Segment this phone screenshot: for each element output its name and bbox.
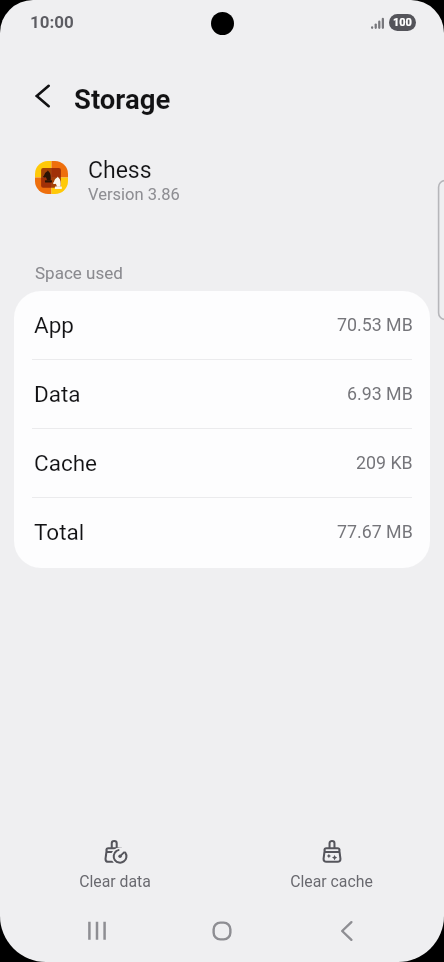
staticText: Total (34, 519, 85, 545)
staticText: 209 KB (356, 452, 413, 473)
button[interactable]: Recent apps (72, 906, 122, 956)
button[interactable]: Data (14, 360, 430, 429)
staticText: App (34, 312, 74, 338)
staticText: Chess (88, 157, 152, 184)
staticText: 100 (393, 16, 412, 29)
staticText: 70.53 MB (337, 314, 413, 335)
staticText: 10:00 (30, 12, 74, 32)
button[interactable]: Cache (14, 429, 430, 498)
staticText: Storage (74, 83, 171, 115)
staticText: Version 3.86 (88, 185, 180, 204)
button[interactable]: App (14, 291, 430, 360)
staticText: Data (34, 381, 81, 407)
button[interactable]: Clear data (53, 828, 177, 896)
staticText: Clear data (79, 872, 151, 891)
staticText: 6.93 MB (347, 383, 413, 404)
staticText: 77.67 MB (337, 521, 413, 542)
staticText: Clear cache (290, 872, 373, 891)
button[interactable]: Back (322, 906, 372, 956)
button[interactable]: Back (25, 78, 61, 114)
button[interactable]: Clear cache (269, 828, 393, 896)
button[interactable]: Home (197, 906, 247, 956)
button[interactable]: Total (14, 498, 430, 567)
staticText: Cache (34, 450, 97, 476)
staticText: Space used (35, 263, 123, 283)
